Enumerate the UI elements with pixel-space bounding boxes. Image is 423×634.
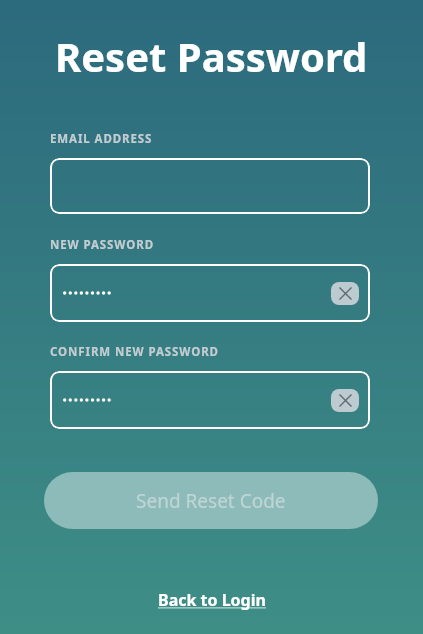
button[interactable] (50, 158, 370, 214)
staticText: NEW PASSWORD (50, 237, 154, 253)
staticText: CONFIRM NEW PASSWORD (50, 344, 219, 360)
staticText: Send Reset Code (136, 488, 286, 514)
button[interactable]: Clear text (50, 264, 370, 322)
button[interactable]: Send Reset Code (44, 472, 378, 529)
staticText: EMAIL ADDRESS (50, 131, 153, 147)
staticText: Reset Password (55, 29, 368, 83)
button[interactable]: Clear text (50, 371, 370, 429)
staticText: Back to Login (158, 589, 266, 611)
button[interactable]: Clear text (331, 282, 359, 305)
button[interactable]: Clear text (331, 389, 359, 412)
button[interactable]: Back to Login (148, 583, 276, 617)
